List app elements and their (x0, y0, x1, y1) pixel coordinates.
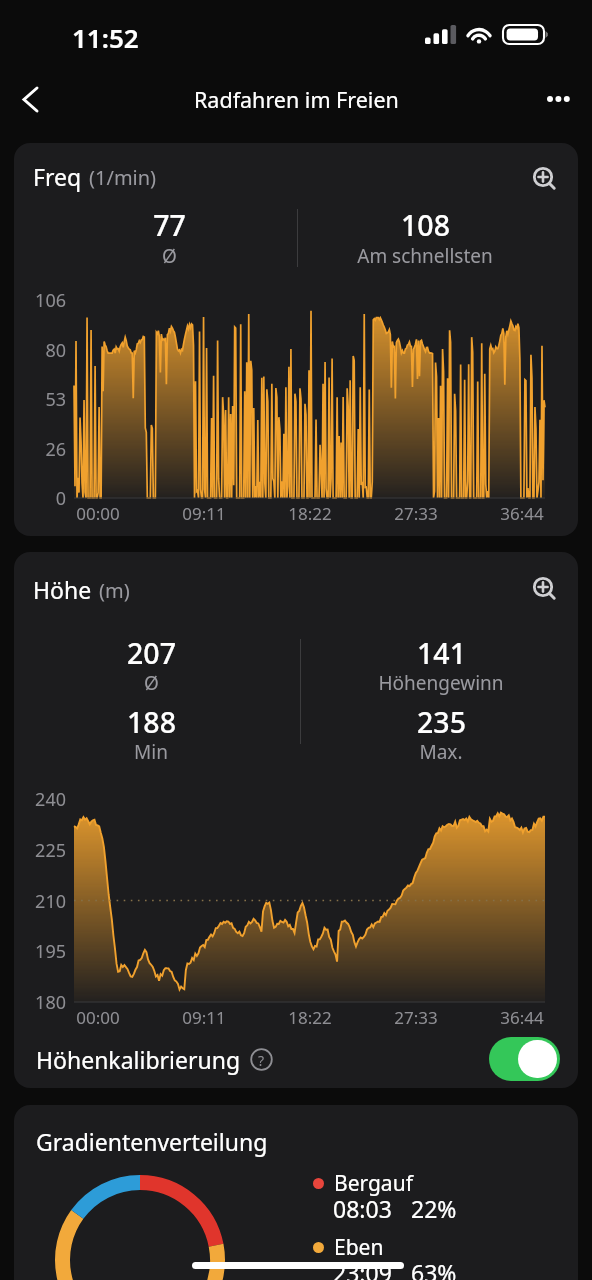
staticText: (m) (99, 577, 130, 604)
staticText: 225 (35, 838, 66, 863)
staticText: 0 (55, 486, 66, 511)
button[interactable]: Vergrößern (520, 154, 566, 200)
staticText: 188 (127, 703, 176, 742)
staticText: Gradientenverteilung (36, 1126, 268, 1157)
staticText: 240 (35, 787, 66, 812)
staticText: 27:33 (394, 502, 438, 525)
staticText: ? (258, 1051, 265, 1070)
staticText: 18:22 (288, 1006, 332, 1029)
staticText: 108 (401, 206, 450, 245)
staticText: Bergauf (334, 1169, 413, 1198)
staticText: 36:44 (500, 502, 544, 525)
staticText: Eben (334, 1233, 384, 1262)
staticText: 141 (417, 634, 466, 673)
staticText: Ø (162, 243, 177, 269)
staticText: Radfahren im Freien (194, 85, 399, 114)
staticText: 08:03 (333, 1193, 392, 1224)
staticText: 210 (35, 889, 66, 914)
staticText: Höhe (33, 574, 92, 605)
staticText: 09:11 (182, 1006, 226, 1029)
staticText: 27:33 (394, 1006, 438, 1029)
staticText: Min (134, 739, 168, 765)
staticText: 80 (45, 338, 66, 363)
staticText: 00:00 (76, 1006, 120, 1029)
staticText: 53 (45, 387, 66, 412)
staticText: 195 (35, 939, 66, 964)
staticText: 235 (417, 703, 466, 742)
staticText: Höhenkalibrierung (36, 1044, 241, 1075)
button[interactable]: Mehr (534, 75, 582, 123)
staticText: Ø (144, 670, 159, 696)
staticText: 207 (127, 634, 176, 673)
button[interactable]: Zurück (6, 75, 54, 123)
staticText: 26 (45, 437, 66, 462)
staticText: 18:22 (288, 502, 332, 525)
staticText: Max. (419, 739, 463, 765)
button[interactable]: Höhenkalibrierung (489, 1037, 560, 1081)
staticText: 180 (35, 990, 66, 1015)
staticText: 36:44 (500, 1006, 544, 1029)
staticText: 77 (153, 206, 186, 245)
staticText: 11:52 (72, 20, 139, 55)
staticText: 23:09 (333, 1257, 392, 1280)
staticText: Am schnellsten (357, 243, 493, 269)
staticText: 106 (35, 288, 66, 313)
staticText: Höhengewinn (378, 670, 504, 696)
staticText: 09:11 (182, 502, 226, 525)
staticText: 00:00 (76, 502, 120, 525)
button[interactable]: Hilfe (250, 1048, 273, 1071)
staticText: 63% (411, 1257, 457, 1280)
button[interactable]: Vergrößern (520, 564, 566, 610)
staticText: (1/min) (89, 164, 157, 191)
staticText: Freq (33, 161, 82, 192)
staticText: 22% (411, 1193, 457, 1224)
